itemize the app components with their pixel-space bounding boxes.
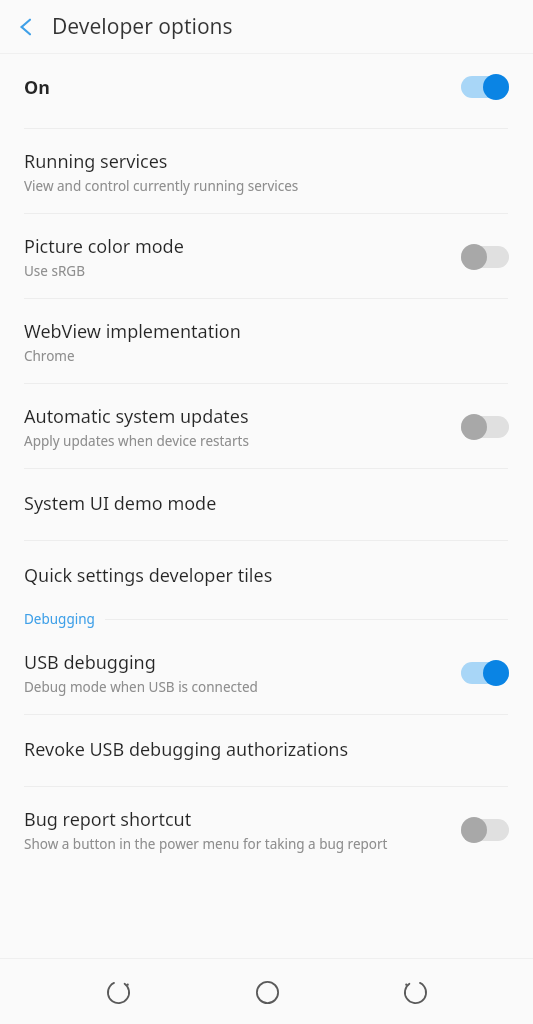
button[interactable]: Revoke USB debugging authorizations <box>0 715 533 786</box>
button[interactable]: Running services <box>0 129 533 213</box>
staticText: Revoke USB debugging authorizations <box>24 737 349 762</box>
button[interactable]: Off <box>461 817 509 843</box>
staticText: Running services <box>24 149 168 174</box>
staticText: Chrome <box>24 347 75 365</box>
button[interactable]: On <box>461 660 509 686</box>
staticText: USB debugging <box>24 650 156 675</box>
staticText: Developer options <box>52 12 233 41</box>
staticText: Quick settings developer tiles <box>24 563 273 588</box>
staticText: Debugging <box>24 610 95 628</box>
button[interactable]: WebView implementation <box>0 299 533 383</box>
staticText: Bug report shortcut <box>24 807 192 832</box>
button[interactable]: On <box>0 54 533 120</box>
button[interactable]: Back <box>384 961 446 1023</box>
button[interactable]: Home <box>236 961 298 1023</box>
staticText: Automatic system updates <box>24 404 249 429</box>
button[interactable]: On <box>461 74 509 100</box>
button[interactable]: Automatic system updates <box>0 384 533 468</box>
button[interactable]: Recent apps <box>87 961 149 1023</box>
staticText: On <box>24 75 50 100</box>
button[interactable]: Back <box>0 0 52 53</box>
staticText: View and control currently running servi… <box>24 177 299 195</box>
button[interactable]: Quick settings developer tiles <box>0 541 533 610</box>
staticText: Use sRGB <box>24 262 85 280</box>
staticText: Apply updates when device restarts <box>24 432 249 450</box>
button[interactable]: Picture color mode <box>0 214 533 298</box>
button[interactable]: Off <box>461 244 509 270</box>
button[interactable]: USB debugging <box>0 628 533 714</box>
button[interactable]: Off <box>461 414 509 440</box>
staticText: Debug mode when USB is connected <box>24 678 258 696</box>
staticText: Show a button in the power menu for taki… <box>24 835 388 853</box>
staticText: System UI demo mode <box>24 491 217 516</box>
button[interactable]: System UI demo mode <box>0 469 533 540</box>
staticText: Picture color mode <box>24 234 184 259</box>
button[interactable]: Bug report shortcut <box>0 787 533 867</box>
staticText: WebView implementation <box>24 319 241 344</box>
